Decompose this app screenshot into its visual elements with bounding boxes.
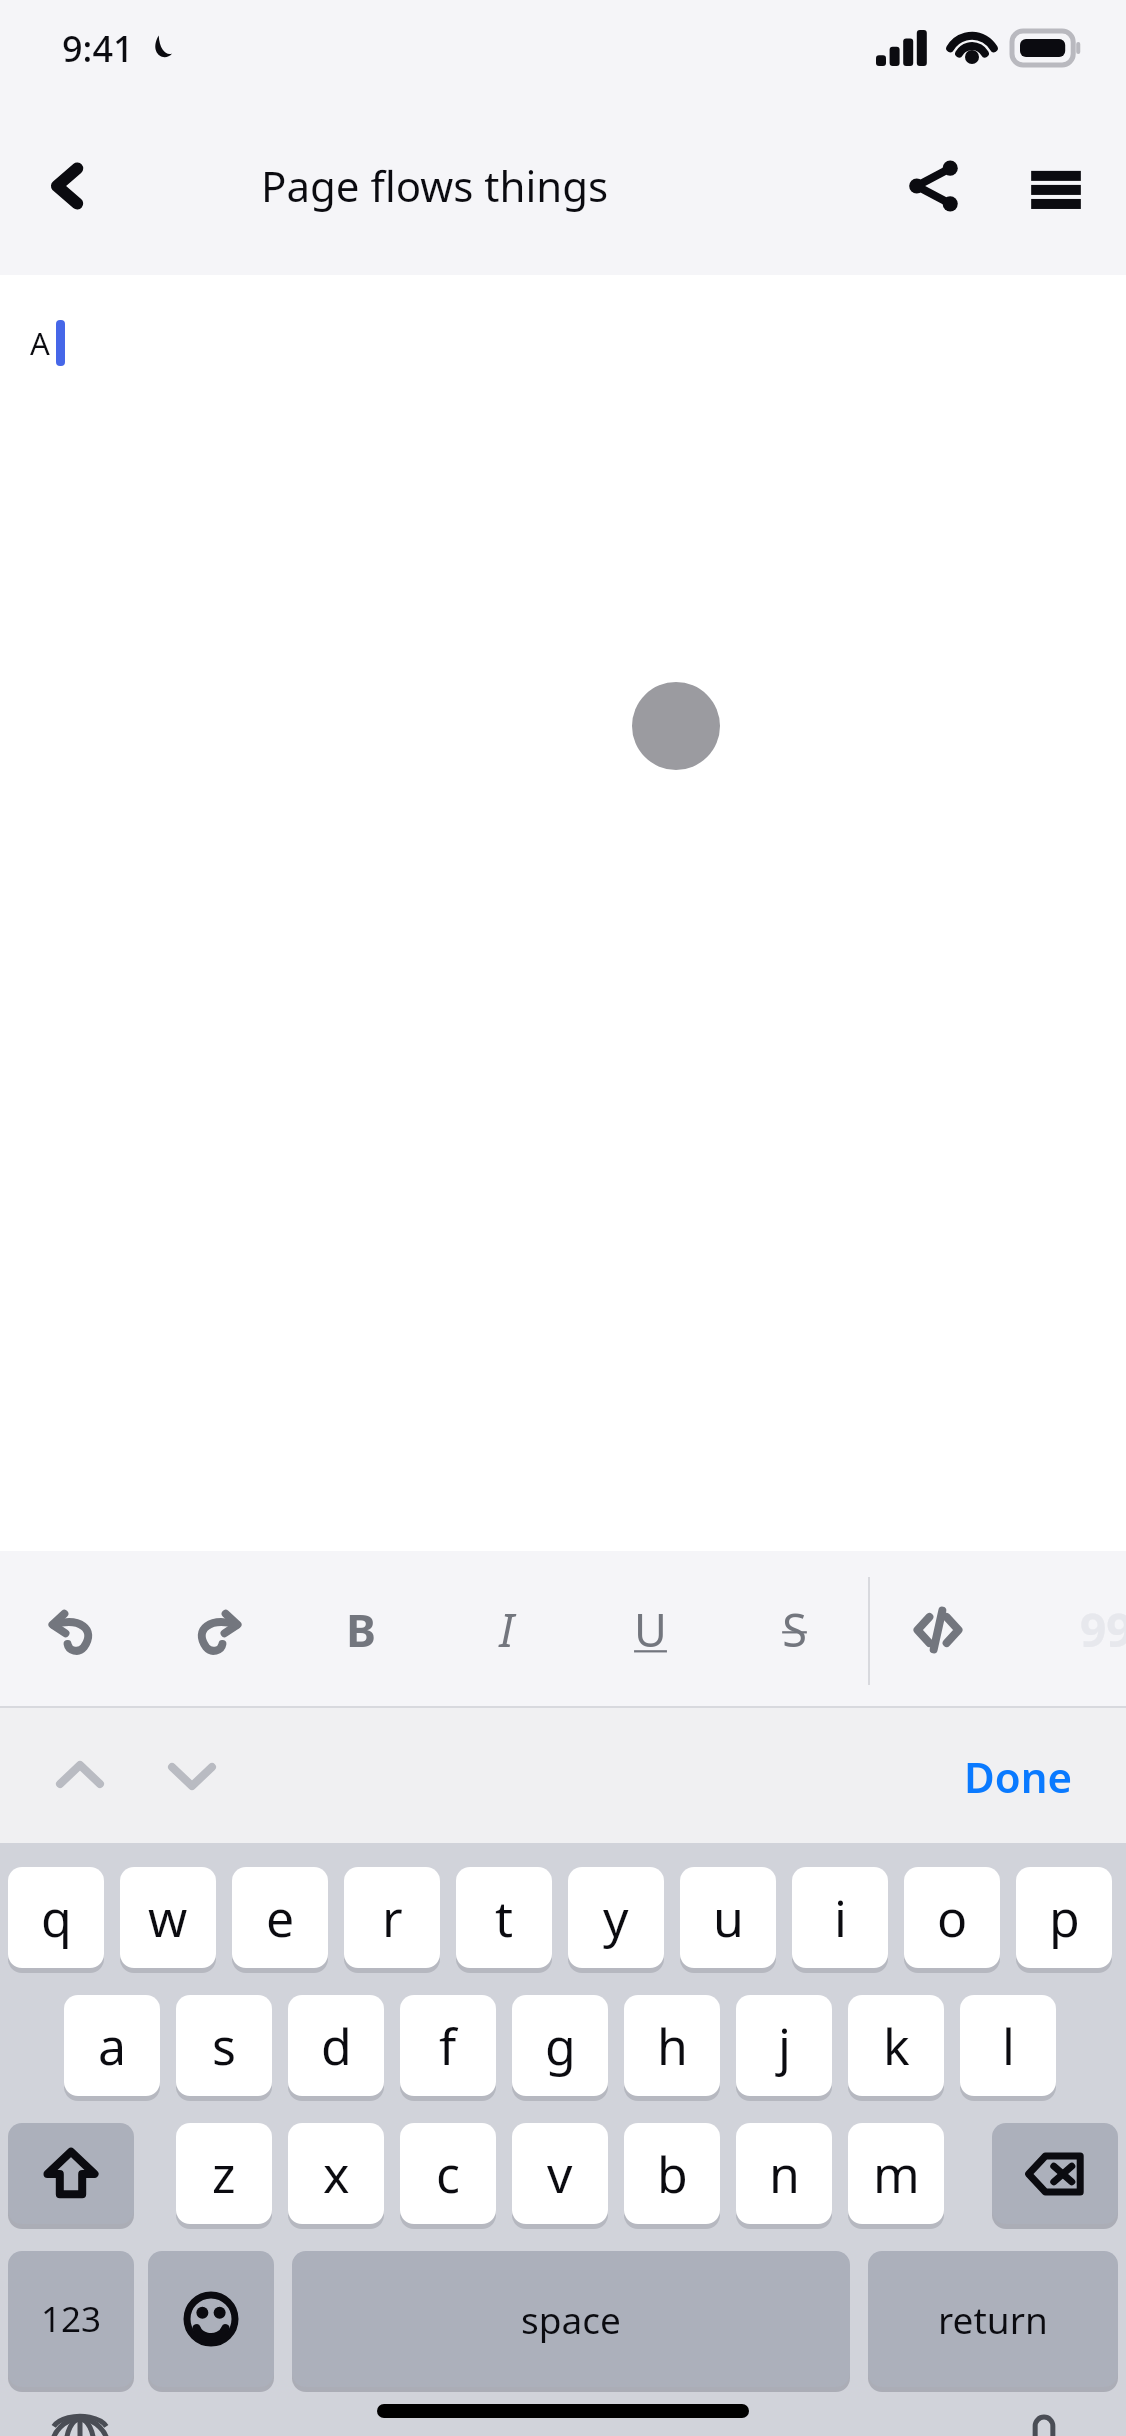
button[interactable]: 99 bbox=[1058, 1551, 1126, 1708]
staticText: h bbox=[657, 2012, 688, 2080]
button[interactable]: u bbox=[680, 1867, 776, 1973]
staticText: g bbox=[545, 2012, 576, 2080]
button[interactable]: k bbox=[848, 1995, 944, 2101]
staticText: m bbox=[873, 2140, 920, 2208]
button[interactable]: b bbox=[624, 2123, 720, 2229]
button[interactable]: S bbox=[746, 1551, 842, 1708]
staticText: S bbox=[782, 1599, 807, 1660]
staticText: I bbox=[499, 1599, 514, 1660]
staticText: c bbox=[436, 2140, 460, 2208]
staticText: A bbox=[30, 322, 50, 364]
staticText: x bbox=[323, 2140, 350, 2208]
staticText: 99 bbox=[1080, 1598, 1126, 1661]
button[interactable]: y bbox=[568, 1867, 664, 1973]
button[interactable]: U bbox=[602, 1551, 698, 1708]
staticText: 123 bbox=[41, 2295, 102, 2343]
button[interactable]: space bbox=[292, 2251, 850, 2392]
staticText: return bbox=[938, 2294, 1048, 2344]
button[interactable]: Emoji bbox=[148, 2251, 274, 2392]
button[interactable]: Format action bbox=[890, 1551, 986, 1708]
staticText: e bbox=[266, 1884, 295, 1952]
button[interactable]: Shift bbox=[8, 2123, 134, 2229]
button[interactable]: Format action bbox=[169, 1551, 265, 1708]
staticText: j bbox=[778, 2012, 791, 2080]
staticText: z bbox=[212, 2140, 236, 2208]
button[interactable]: B bbox=[313, 1551, 409, 1708]
button[interactable]: Backspace bbox=[992, 2123, 1118, 2229]
staticText: w bbox=[148, 1884, 188, 1952]
staticText: v bbox=[547, 2140, 573, 2208]
button[interactable]: I bbox=[458, 1551, 554, 1708]
staticText: t bbox=[495, 1884, 514, 1952]
button[interactable]: a bbox=[64, 1995, 160, 2101]
button[interactable]: p bbox=[1016, 1867, 1112, 1973]
button[interactable]: Dictate bbox=[988, 2391, 1100, 2436]
staticText: u bbox=[713, 1884, 744, 1952]
staticText: B bbox=[346, 1599, 376, 1660]
button[interactable]: m bbox=[848, 2123, 944, 2229]
button[interactable]: l bbox=[960, 1995, 1056, 2101]
staticText: space bbox=[521, 2294, 621, 2344]
button[interactable]: z bbox=[176, 2123, 272, 2229]
button[interactable]: c bbox=[400, 2123, 496, 2229]
staticText: y bbox=[603, 1884, 629, 1952]
button[interactable]: Done bbox=[934, 1720, 1102, 1832]
staticText: n bbox=[769, 2140, 800, 2208]
button[interactable]: w bbox=[120, 1867, 216, 1973]
staticText: a bbox=[98, 2012, 127, 2080]
staticText: f bbox=[439, 2012, 457, 2080]
staticText: 9:41 bbox=[62, 24, 134, 73]
staticText: l bbox=[1002, 2012, 1015, 2080]
button[interactable]: h bbox=[624, 1995, 720, 2101]
staticText: Page flows things bbox=[261, 157, 609, 214]
button[interactable]: f bbox=[400, 1995, 496, 2101]
button[interactable]: t bbox=[456, 1867, 552, 1973]
button[interactable]: s bbox=[176, 1995, 272, 2101]
button[interactable]: Next field bbox=[136, 1720, 248, 1832]
staticText: q bbox=[41, 1884, 72, 1952]
staticText: r bbox=[382, 1884, 403, 1952]
button[interactable]: Menu bbox=[1008, 138, 1104, 234]
button[interactable]: d bbox=[288, 1995, 384, 2101]
button[interactable]: 123 bbox=[8, 2251, 134, 2392]
staticText: Done bbox=[964, 1748, 1073, 1805]
button[interactable]: Change keyboard bbox=[24, 2391, 136, 2436]
button[interactable]: q bbox=[8, 1867, 104, 1973]
button[interactable]: v bbox=[512, 2123, 608, 2229]
button[interactable]: x bbox=[288, 2123, 384, 2229]
button[interactable]: i bbox=[792, 1867, 888, 1973]
staticText: p bbox=[1049, 1884, 1080, 1952]
button[interactable]: o bbox=[904, 1867, 1000, 1973]
staticText: d bbox=[321, 2012, 352, 2080]
staticText: o bbox=[937, 1884, 968, 1952]
button[interactable]: Previous field bbox=[24, 1720, 136, 1832]
staticText: U bbox=[634, 1599, 667, 1660]
button[interactable]: return bbox=[868, 2251, 1118, 2392]
button[interactable]: r bbox=[344, 1867, 440, 1973]
button[interactable]: g bbox=[512, 1995, 608, 2101]
button[interactable]: j bbox=[736, 1995, 832, 2101]
button[interactable]: Share bbox=[886, 138, 982, 234]
staticText: s bbox=[212, 2012, 236, 2080]
button[interactable]: n bbox=[736, 2123, 832, 2229]
button[interactable]: e bbox=[232, 1867, 328, 1973]
button[interactable]: Back bbox=[20, 138, 116, 234]
staticText: b bbox=[657, 2140, 688, 2208]
staticText: i bbox=[834, 1884, 847, 1952]
staticText: k bbox=[883, 2012, 910, 2080]
button[interactable]: Format action bbox=[25, 1551, 121, 1708]
